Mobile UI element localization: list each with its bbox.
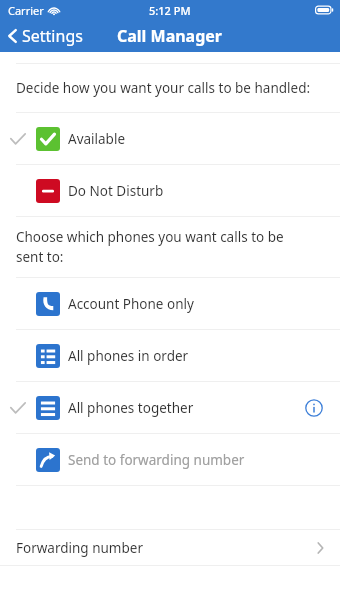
staticText: Choose which phones you want calls to be… bbox=[16, 228, 284, 266]
button[interactable]: Send to forwarding number bbox=[0, 434, 340, 485]
staticText: Do Not Disturb bbox=[68, 182, 164, 200]
button[interactable]: All phones together bbox=[0, 382, 340, 433]
staticText: Available bbox=[68, 130, 125, 148]
button[interactable]: More information bbox=[303, 397, 325, 419]
staticText: Carrier bbox=[8, 3, 44, 18]
staticText: Forwarding number bbox=[16, 539, 143, 557]
button[interactable]: All phones in order bbox=[0, 330, 340, 381]
button[interactable]: Account Phone only bbox=[0, 278, 340, 329]
staticText: All phones in order bbox=[68, 347, 189, 365]
button[interactable]: Available bbox=[0, 113, 340, 164]
staticText: Account Phone only bbox=[68, 295, 194, 313]
staticText: Settings bbox=[22, 25, 83, 47]
staticText: 5:12 PM bbox=[149, 3, 191, 18]
staticText: Send to forwarding number bbox=[68, 451, 245, 469]
button[interactable]: Do Not Disturb bbox=[0, 165, 340, 216]
button[interactable]: Forwarding number bbox=[0, 530, 340, 565]
staticText: All phones together bbox=[68, 399, 194, 417]
staticText: Decide how you want your calls to be han… bbox=[16, 79, 311, 97]
staticText: Call Manager bbox=[117, 25, 223, 47]
button[interactable]: Settings bbox=[0, 21, 93, 51]
